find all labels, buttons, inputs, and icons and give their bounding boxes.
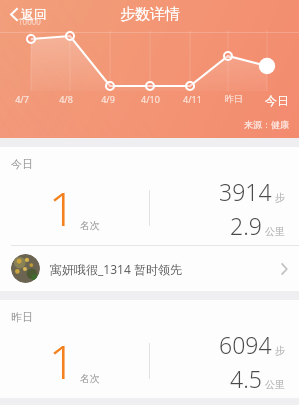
staticText: 寓妍哦徦_1314 暂时领先: [50, 261, 280, 277]
staticText: 名次: [80, 219, 100, 232]
staticText: 昨日: [11, 310, 33, 324]
staticText: 4/10: [141, 93, 160, 105]
staticText: 4/8: [59, 93, 73, 105]
staticText: 1: [49, 330, 76, 393]
staticText: 4/11: [183, 93, 202, 105]
other: 查看详情: [280, 262, 288, 276]
staticText: 10000: [18, 16, 41, 27]
staticText: 步: [275, 191, 285, 204]
staticText: 返回: [21, 6, 47, 22]
staticText: 昨日: [225, 93, 243, 104]
staticText: 6094: [219, 329, 272, 360]
staticText: 3914: [219, 176, 272, 207]
staticText: 公里: [265, 225, 285, 238]
staticText: 2.9: [230, 210, 262, 241]
staticText: 步: [275, 344, 285, 357]
staticText: 4.5: [230, 363, 262, 394]
staticText: 公里: [265, 378, 285, 391]
staticText: 4/7: [15, 93, 29, 105]
staticText: 4/9: [101, 93, 115, 105]
button[interactable]: 返回: [4, 2, 53, 26]
staticText: 步数详情: [120, 5, 180, 24]
staticText: 名次: [80, 372, 100, 385]
staticText: 今日: [11, 157, 33, 171]
button[interactable]: 寓妍哦徦_1314 暂时领先: [0, 246, 299, 291]
staticText: 1: [49, 177, 76, 240]
staticText: 今日: [265, 93, 289, 108]
staticText: 来源：健康: [244, 119, 289, 130]
